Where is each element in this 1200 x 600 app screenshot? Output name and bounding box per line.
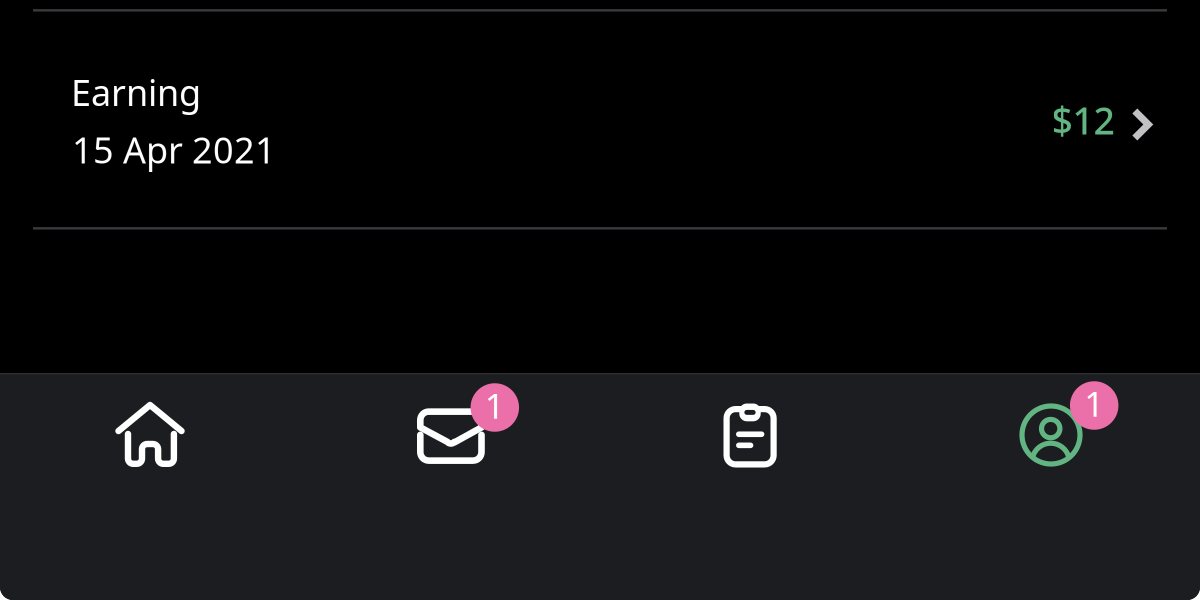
staticText: $12 xyxy=(1051,95,1114,145)
staticText: 1 xyxy=(485,382,505,428)
button[interactable]: Earning xyxy=(0,0,1200,240)
staticText: 15 Apr 2021 xyxy=(72,126,276,173)
staticText: Earning xyxy=(71,68,201,116)
button[interactable]: Profile, 1 notification xyxy=(900,374,1200,600)
button[interactable]: Tasks xyxy=(600,374,900,600)
button[interactable]: Home xyxy=(0,374,300,600)
button[interactable]: Messages, 1 unread xyxy=(300,374,600,600)
staticText: 1 xyxy=(1084,380,1104,426)
